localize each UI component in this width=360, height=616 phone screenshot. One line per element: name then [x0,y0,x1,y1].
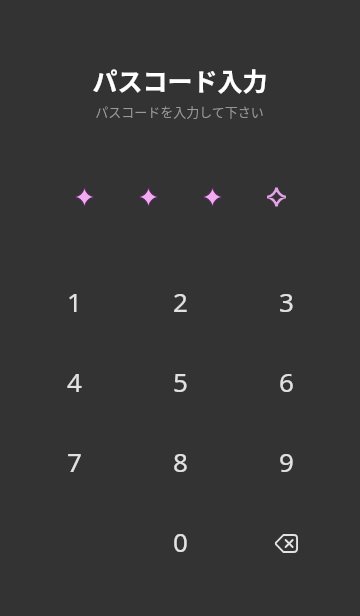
staticText: パスコード入力 [92,62,268,98]
staticText: 8 [173,444,188,479]
button[interactable]: 0 [144,505,216,577]
button[interactable]: 7 [38,425,110,497]
staticText: 6 [279,364,294,399]
button[interactable]: 5 [144,345,216,417]
staticText: 0 [173,524,188,559]
staticText: パスコードを入力して下さい [95,102,264,121]
button[interactable]: 9 [250,425,322,497]
staticText: 9 [279,444,294,479]
staticText: 2 [173,284,188,319]
button[interactable]: 8 [144,425,216,497]
staticText: 7 [67,444,82,479]
staticText: 1 [67,284,82,319]
button[interactable]: Delete [250,505,322,577]
button[interactable]: 3 [250,265,322,337]
button[interactable]: 2 [144,265,216,337]
button[interactable]: 6 [250,345,322,417]
button[interactable]: 1 [38,265,110,337]
staticText: 3 [279,284,294,319]
staticText: 4 [67,364,82,399]
staticText: 5 [173,364,188,399]
button[interactable]: 4 [38,345,110,417]
